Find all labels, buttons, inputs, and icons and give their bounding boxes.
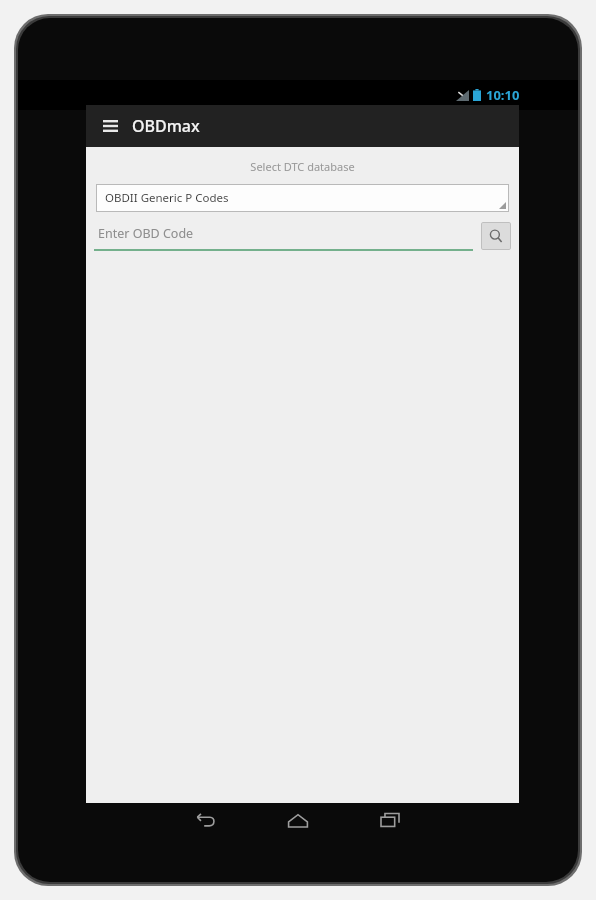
button[interactable]: Search — [481, 222, 511, 250]
staticText: Enter OBD Code — [98, 225, 194, 242]
staticText: 10:10 — [486, 86, 520, 104]
button[interactable]: Enter OBD Code — [94, 221, 473, 251]
button[interactable]: Home — [262, 803, 334, 837]
staticText: OBDmax — [132, 115, 200, 137]
button[interactable]: OBDII Generic P Codes — [96, 184, 509, 212]
button[interactable]: Back — [170, 803, 242, 837]
button[interactable]: Recents — [354, 803, 426, 837]
button[interactable]: Menu — [95, 111, 125, 141]
staticText: Select DTC database — [86, 159, 519, 174]
staticText: OBDII Generic P Codes — [105, 190, 229, 206]
